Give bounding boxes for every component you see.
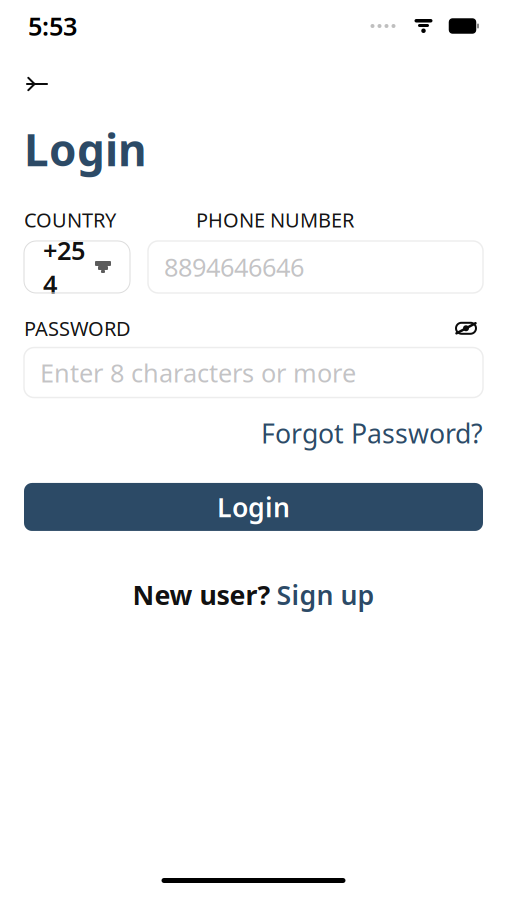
staticText: PHONE NUMBER: [196, 206, 354, 233]
button[interactable]: Show password: [449, 316, 483, 340]
button[interactable]: Forgot Password?: [261, 411, 483, 455]
button[interactable]: Login: [24, 483, 483, 531]
staticText: Enter 8 characters or more: [40, 356, 356, 389]
staticText: +254: [43, 233, 85, 301]
staticText: 8894646646: [164, 250, 304, 284]
staticText: Login: [217, 489, 290, 525]
staticText: 5:53: [28, 9, 77, 43]
staticText: PASSWORD: [24, 315, 131, 342]
button[interactable]: Sign up: [276, 577, 374, 612]
staticText: New user?: [132, 577, 270, 612]
button[interactable]: 8894646646: [148, 241, 483, 293]
button[interactable]: Back: [0, 62, 74, 106]
staticText: Forgot Password?: [261, 415, 483, 451]
staticText: Sign up: [276, 577, 374, 612]
button[interactable]: Enter 8 characters or more: [24, 347, 483, 397]
button[interactable]: Country code, +254: [24, 241, 130, 293]
staticText: COUNTRY: [24, 206, 116, 233]
staticText: Login: [24, 120, 147, 178]
